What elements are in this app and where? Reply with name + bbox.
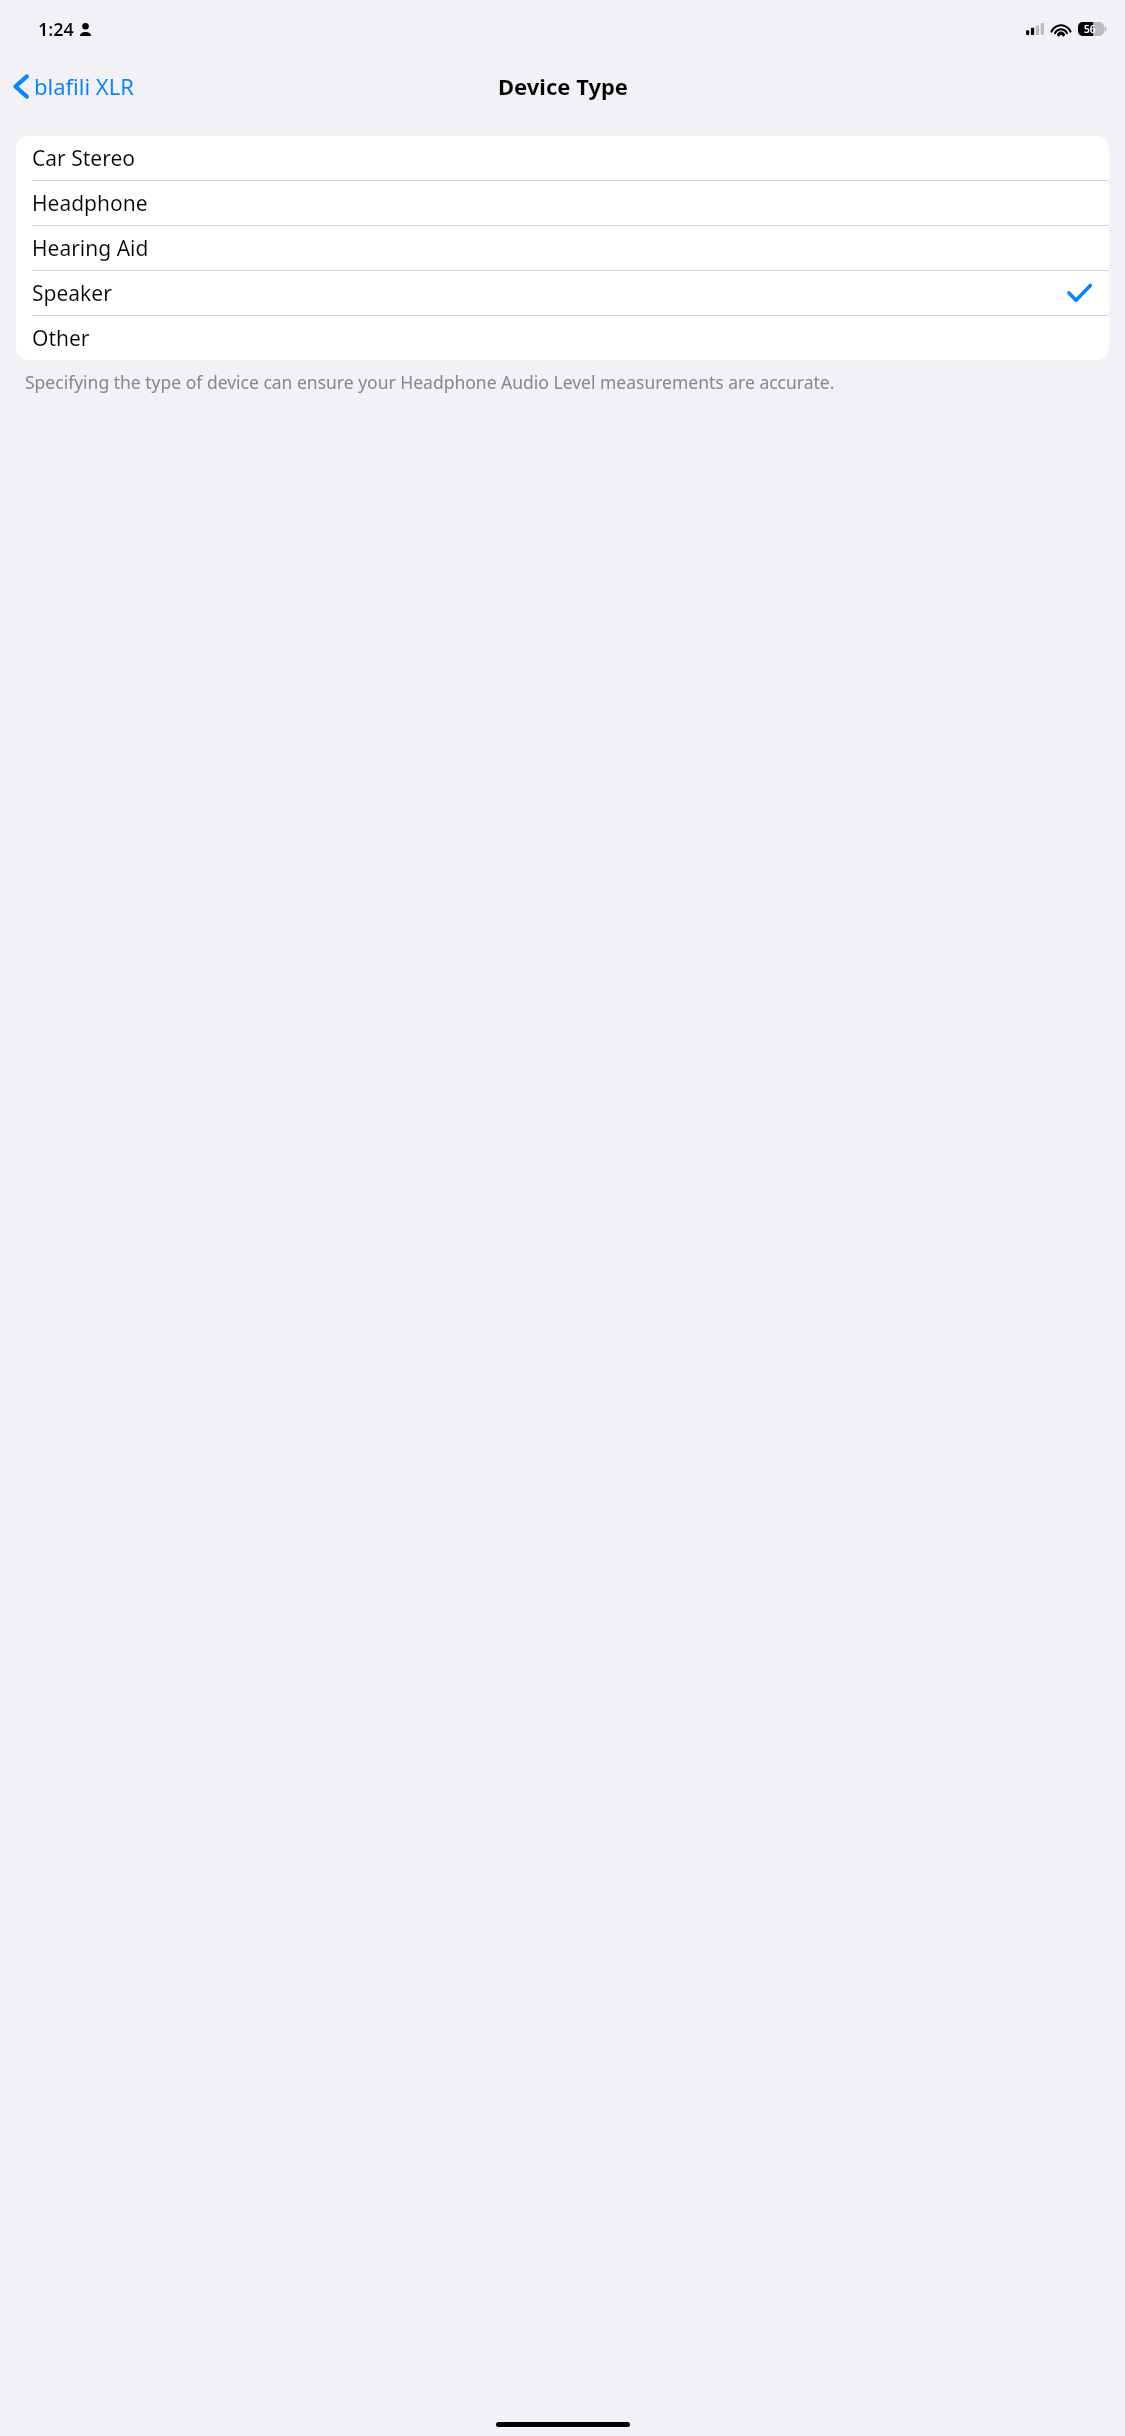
staticText: Specifying the type of device can ensure… [25, 370, 835, 394]
staticText: Speaker [32, 279, 112, 308]
staticText: 56 [1084, 22, 1096, 36]
staticText: Device Type [498, 71, 628, 101]
staticText: blafili XLR [34, 71, 134, 101]
button[interactable]: Other [16, 316, 1109, 360]
staticText: Hearing Aid [32, 234, 149, 263]
staticText: Other [32, 324, 90, 353]
button[interactable]: Headphone [16, 181, 1109, 225]
button[interactable]: Hearing Aid [16, 226, 1109, 270]
button[interactable]: Speaker [16, 271, 1109, 315]
staticText: 1:24 [38, 17, 74, 42]
staticText: Car Stereo [32, 144, 135, 173]
button[interactable]: Car Stereo [16, 136, 1109, 180]
button[interactable]: blafili XLR [8, 65, 140, 107]
staticText: Headphone [32, 189, 148, 218]
